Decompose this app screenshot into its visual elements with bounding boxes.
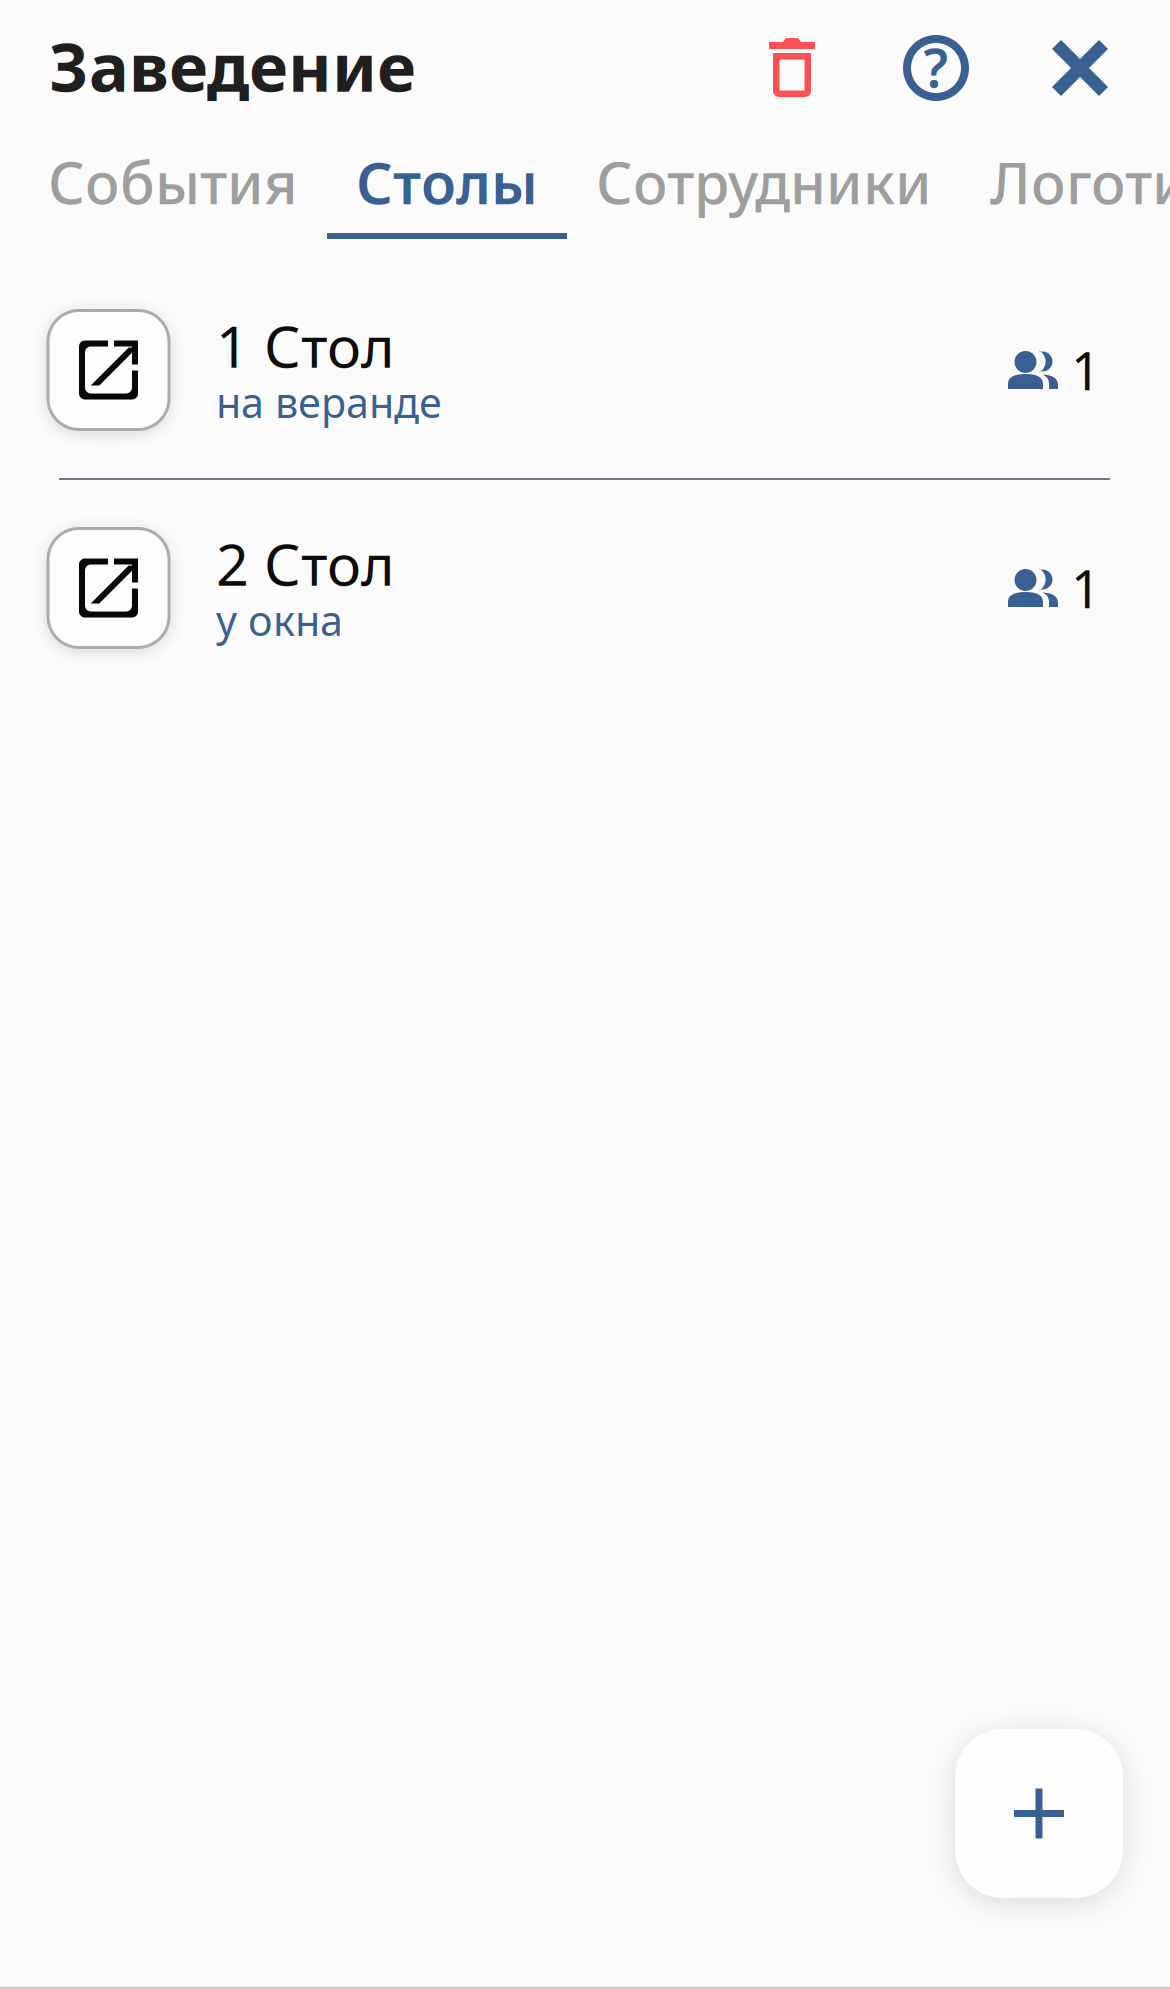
button[interactable]: Добавить xyxy=(955,1729,1123,1898)
button[interactable]: Столы xyxy=(327,136,567,244)
staticText: Логотипы xyxy=(990,144,1170,220)
staticText: на веранде xyxy=(216,375,442,429)
staticText: 1 xyxy=(1071,335,1101,405)
button[interactable]: 2 Стол xyxy=(0,480,1170,696)
staticText: у окна xyxy=(216,593,343,647)
button[interactable]: Закрыть xyxy=(1008,0,1152,136)
staticText: Сотрудники xyxy=(596,144,932,220)
button[interactable]: Открыть стол 1 Стол xyxy=(48,310,169,429)
button[interactable]: Удалить xyxy=(720,0,864,136)
button[interactable]: События xyxy=(19,136,327,244)
button[interactable]: Логотипы xyxy=(961,136,1170,244)
button[interactable]: Справка xyxy=(864,0,1008,136)
staticText: Заведение xyxy=(49,22,416,110)
staticText: ? xyxy=(923,32,948,102)
staticText: Столы xyxy=(356,144,538,220)
staticText: 1 Стол xyxy=(216,307,395,384)
staticText: 2 Стол xyxy=(216,525,395,602)
button[interactable]: Открыть стол 2 Стол xyxy=(48,528,169,647)
staticText: 1 xyxy=(1071,553,1101,623)
button[interactable]: Сотрудники xyxy=(567,136,961,244)
staticText: События xyxy=(48,144,298,220)
button[interactable]: 1 Стол xyxy=(0,262,1170,478)
